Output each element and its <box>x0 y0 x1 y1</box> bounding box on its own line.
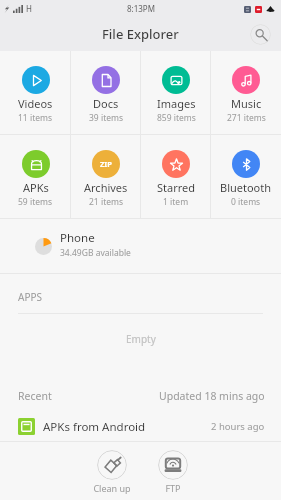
staticText: Archives <box>84 180 128 195</box>
staticText: Starred <box>157 180 196 195</box>
staticText: Recent <box>18 389 52 403</box>
button[interactable]: Starred <box>141 135 211 218</box>
staticText: Bluetooth <box>220 180 272 195</box>
staticText: 2 hours ago <box>211 420 265 433</box>
staticText: Empty <box>126 332 156 346</box>
staticText: 1 item <box>163 196 189 208</box>
staticText: Docs <box>93 96 119 111</box>
button[interactable]: Music <box>211 51 281 134</box>
staticText: ZIP <box>100 159 112 169</box>
button[interactable]: FTP <box>157 450 189 494</box>
staticText: FTP <box>165 482 181 494</box>
staticText: Updated 18 mins ago <box>159 389 265 403</box>
staticText: 39 items <box>89 112 124 124</box>
staticText: 271 items <box>227 112 266 124</box>
button[interactable]: Phone <box>0 219 281 273</box>
staticText: APPS <box>18 290 42 304</box>
staticText: Phone <box>60 230 95 246</box>
staticText: APKs from Android <box>43 419 146 435</box>
button[interactable]: Images <box>141 51 211 134</box>
staticText: 11 items <box>18 112 53 124</box>
staticText: Music <box>231 96 262 111</box>
button[interactable]: APKs from Android <box>0 411 281 441</box>
button[interactable]: APKs <box>0 135 71 218</box>
staticText: 0 items <box>231 196 261 208</box>
staticText: 34.49GB available <box>60 247 131 259</box>
staticText: APKs <box>23 180 49 195</box>
staticText: Clean up <box>93 482 131 494</box>
button[interactable]: ZIP <box>71 135 141 218</box>
staticText: 8:13PM <box>127 3 155 14</box>
staticText: Videos <box>18 96 53 111</box>
staticText: File Explorer <box>102 25 179 43</box>
staticText: 59 items <box>18 196 53 208</box>
button[interactable]: Bluetooth <box>211 135 281 218</box>
button[interactable]: Docs <box>71 51 141 134</box>
staticText: 859 items <box>157 112 196 124</box>
button[interactable]: Videos <box>0 51 71 134</box>
staticText: Images <box>157 96 196 111</box>
staticText: H <box>26 3 32 14</box>
button[interactable]: Search <box>250 24 271 45</box>
button[interactable]: Clean up <box>92 450 132 494</box>
staticText: 21 items <box>89 196 124 208</box>
